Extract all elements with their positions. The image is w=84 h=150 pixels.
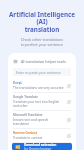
other: Copy	[67, 118, 71, 122]
staticText: Reverso Context	[13, 131, 37, 135]
button[interactable]: Reverso Context	[8, 129, 76, 142]
button[interactable]: Enter or paste your sentence	[13, 68, 71, 76]
staticText: Instant text and speech translation	[13, 118, 64, 126]
button[interactable]: DeepL	[8, 79, 76, 92]
staticText: Google Translate	[13, 95, 38, 99]
staticText: Translate your text into English and oth…	[13, 100, 64, 108]
other: Copy	[67, 134, 71, 138]
staticText: AI translation helper tools	[21, 59, 71, 64]
staticText: Artificial Intelligence (AI) translation	[6, 10, 78, 34]
staticText: Translate in context	[13, 136, 43, 140]
button[interactable]: Menu	[8, 58, 76, 65]
staticText: DeepL	[13, 81, 23, 85]
button[interactable]: Extension	[12, 143, 72, 150]
staticText: Microsoft Translator	[13, 113, 43, 117]
button[interactable]: Microsoft Translator	[8, 111, 76, 128]
staticText: Enter or paste your sentence	[16, 70, 61, 74]
staticText: for Chrome browser	[24, 147, 52, 150]
staticText: The translations are very accurate	[13, 86, 64, 90]
other: Extension	[15, 144, 21, 150]
button[interactable]: Google Translate	[8, 93, 76, 110]
other: Menu	[13, 59, 18, 64]
staticText: Download extension	[24, 143, 57, 147]
staticText: Check other translations to perfect your…	[8, 37, 76, 47]
other: Copy	[67, 84, 71, 88]
other: Copy	[67, 100, 71, 104]
